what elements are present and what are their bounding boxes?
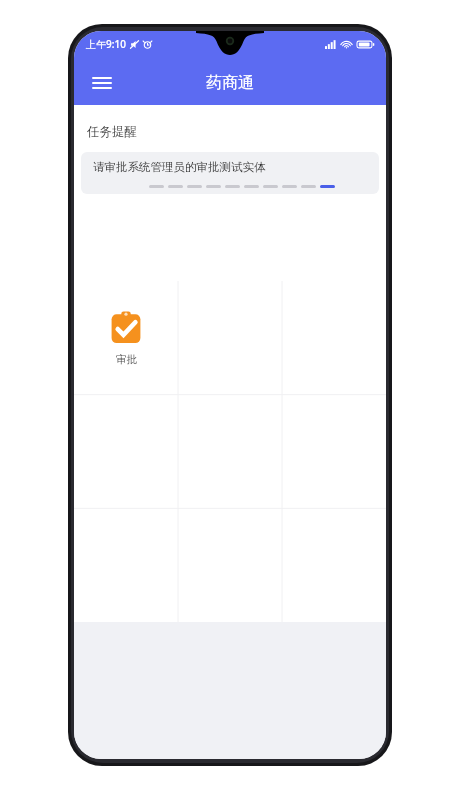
staticText: 审批 — [116, 353, 137, 366]
staticText: 请审批系统管理员的审批测试实体 — [93, 160, 266, 174]
button[interactable]: 审批 — [74, 281, 178, 394]
button[interactable]: Menu — [82, 63, 122, 103]
button[interactable]: 请审批系统管理员的审批测试实体 — [81, 152, 379, 194]
staticText: 任务提醒 — [87, 124, 137, 140]
staticText: 上午9:10 — [86, 37, 126, 51]
staticText: 药商通 — [206, 73, 254, 93]
